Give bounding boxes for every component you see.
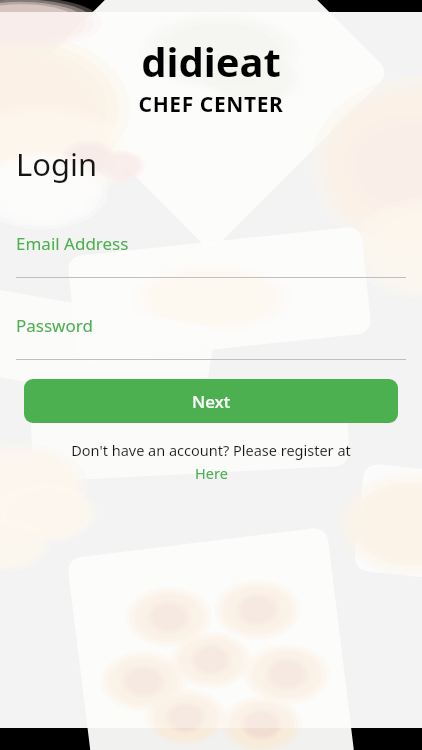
staticText: Don't have an account? Please register a… [0,440,422,460]
staticText: Email Address [16,232,129,255]
staticText: Here [195,463,228,483]
staticText: didieat [0,34,422,88]
staticText: CHEF CENTER [0,90,422,119]
staticText: Login [16,143,98,185]
button[interactable]: Password [16,314,406,360]
button[interactable]: Here [0,463,422,483]
button[interactable]: Next [24,379,398,423]
staticText: Password [16,314,93,337]
staticText: Next [192,390,231,413]
button[interactable]: Email Address [16,232,406,278]
